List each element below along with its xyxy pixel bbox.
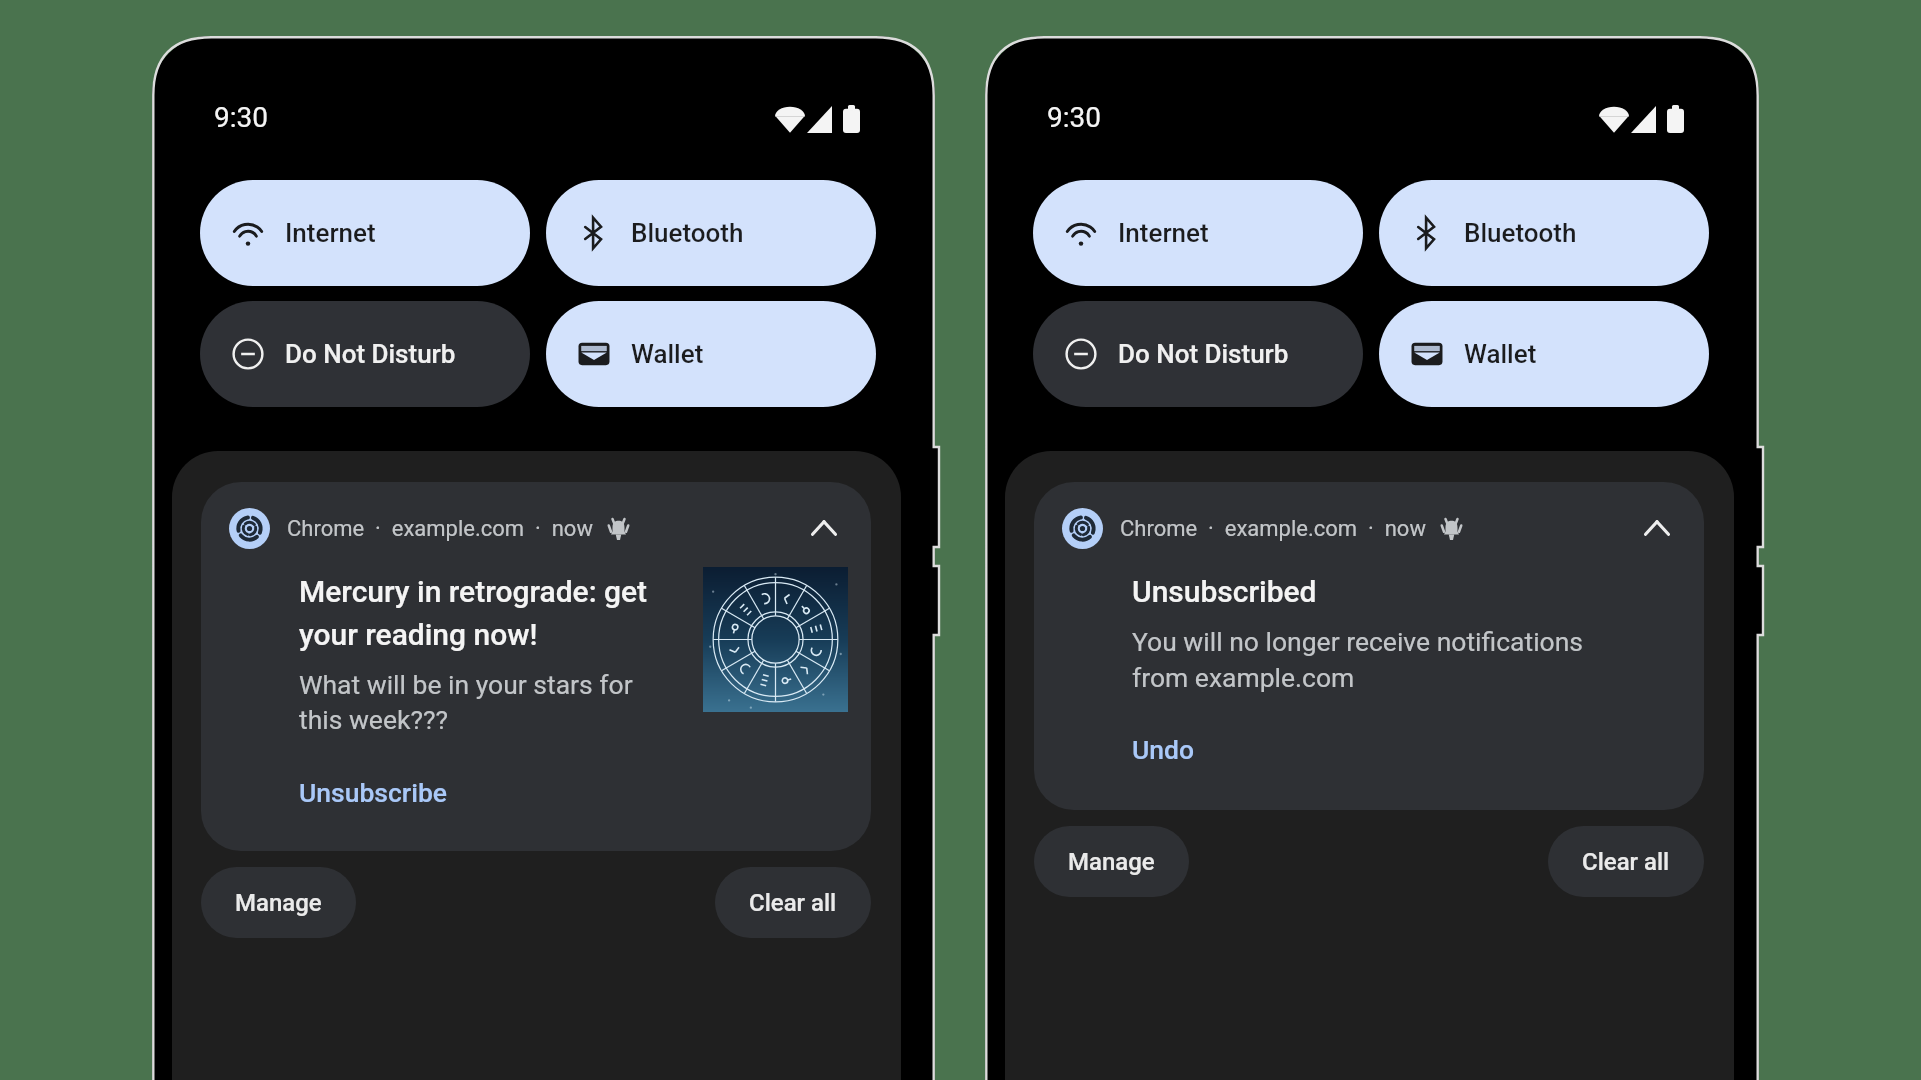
button[interactable]: Wallet [1379,301,1709,407]
staticText: Unsubscribed [1132,574,1317,609]
staticText: Chrome · example.com · now [1120,516,1426,542]
button[interactable]: Undo [1124,728,1203,771]
button[interactable]: Bluetooth [1379,180,1709,286]
staticText: 9:30 [1047,101,1101,134]
staticText: Undo [1132,734,1195,765]
staticText: Clear all [749,889,837,917]
button[interactable]: Manage [1034,826,1189,897]
staticText: Do Not Disturb [1118,339,1289,369]
staticText: Unsubscribe [299,777,448,808]
staticText: Do Not Disturb [285,339,456,369]
staticText: Wallet [1464,339,1537,369]
button[interactable]: Internet [200,180,530,286]
button[interactable]: Manage [201,867,356,938]
staticText: Chrome · example.com · now [287,516,593,542]
staticText: Clear all [1582,848,1670,876]
button[interactable]: Do Not Disturb [1033,301,1363,407]
button[interactable]: Collapse notification [1622,493,1692,563]
staticText: Mercury in retrograde: get your reading … [299,574,659,652]
staticText: Internet [1118,218,1209,248]
button[interactable]: Unsubscribe [291,771,456,814]
staticText: Manage [1068,848,1155,876]
button[interactable]: Wallet [546,301,876,407]
staticText: Wallet [631,339,704,369]
button[interactable]: Internet [1033,180,1363,286]
staticText: What will be in your stars for this week… [299,669,659,735]
staticText: Bluetooth [1464,218,1577,248]
button[interactable]: Bluetooth [546,180,876,286]
staticText: You will no longer receive notifications… [1132,626,1592,693]
button[interactable]: Clear all [1548,826,1704,897]
button[interactable]: Clear all [715,867,871,938]
button[interactable]: Collapse notification [789,493,859,563]
button[interactable]: Chrome · example.com · now [201,482,871,851]
button[interactable]: Chrome · example.com · now [1034,482,1704,810]
staticText: Bluetooth [631,218,744,248]
staticText: Manage [235,889,322,917]
staticText: 9:30 [214,101,268,134]
button[interactable]: Do Not Disturb [200,301,530,407]
staticText: Internet [285,218,376,248]
